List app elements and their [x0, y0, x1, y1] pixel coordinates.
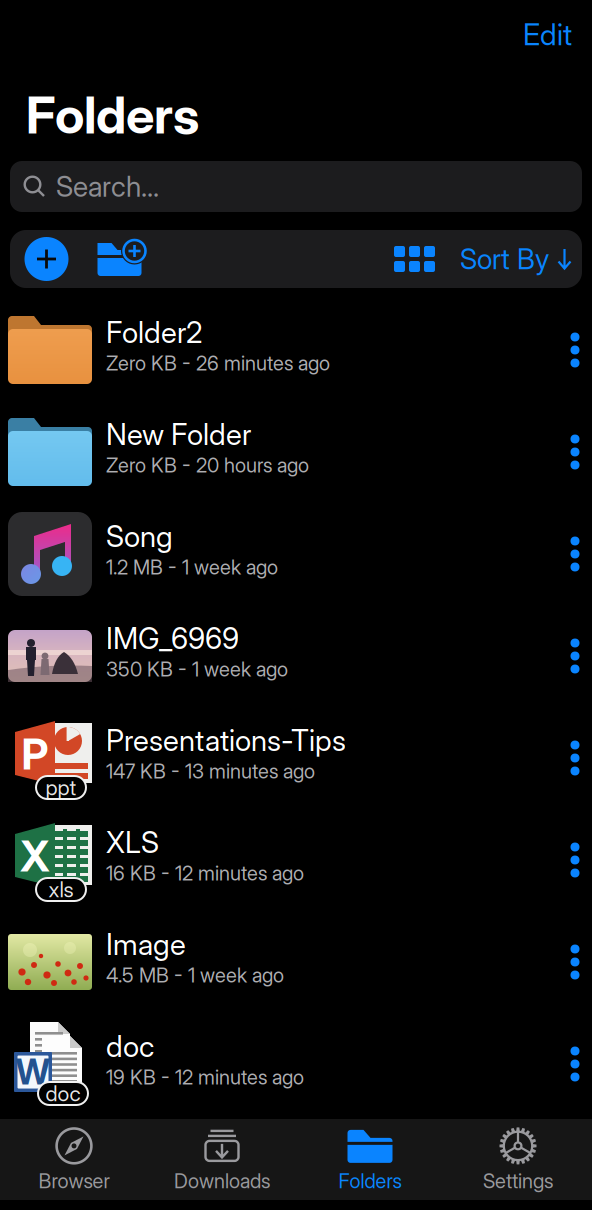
staticText: 147 KB - 13 minutes ago [106, 759, 315, 783]
staticText: 1.2 MB - 1 week ago [106, 555, 278, 579]
staticText: doc [45, 1081, 80, 1106]
button[interactable]: Sort By [460, 230, 582, 288]
button[interactable]: Song [0, 503, 592, 605]
button[interactable]: Image [0, 911, 592, 1013]
staticText: ppt [45, 775, 76, 800]
staticText: 19 KB - 12 minutes ago [106, 1065, 304, 1089]
staticText: W [15, 1051, 50, 1093]
button[interactable]: X [0, 809, 592, 911]
button[interactable]: New Folder [0, 401, 592, 503]
staticText: IMG_6969 [106, 621, 239, 656]
button[interactable]: Browser [0, 1118, 148, 1200]
staticText: Song [106, 519, 173, 554]
staticText: Edit [523, 17, 572, 52]
button[interactable]: Grid view [322, 230, 460, 288]
staticText: Image [106, 927, 186, 962]
staticText: Folders [338, 1169, 401, 1193]
button[interactable]: Edit [503, 7, 592, 62]
staticText: 4.5 MB - 1 week ago [106, 963, 284, 987]
staticText: X [20, 830, 50, 882]
staticText: Presentations-Tips [106, 723, 346, 758]
staticText: doc [106, 1029, 154, 1064]
staticText: xls [48, 877, 73, 902]
staticText: XLS [106, 825, 159, 860]
button[interactable]: Folders [296, 1118, 444, 1200]
staticText: New Folder [106, 417, 251, 452]
staticText: Browser [38, 1169, 109, 1193]
button[interactable]: IMG_6969 [0, 605, 592, 707]
button[interactable]: Folder2 [0, 299, 592, 401]
staticText: Zero KB - 20 hours ago [106, 453, 309, 477]
button[interactable]: Add [18, 230, 75, 288]
button[interactable]: Settings [444, 1118, 592, 1200]
staticText: Zero KB - 26 minutes ago [106, 351, 330, 375]
staticText: Sort By [460, 242, 549, 276]
staticText: Folders [26, 84, 199, 146]
button[interactable]: P [0, 707, 592, 809]
staticText: Settings [483, 1169, 553, 1193]
button[interactable]: W [0, 1013, 592, 1115]
staticText: 350 KB - 1 week ago [106, 657, 288, 681]
button[interactable]: New Folder [75, 230, 151, 288]
staticText: Downloads [174, 1169, 270, 1193]
staticText: Search... [56, 170, 159, 203]
staticText: Folder2 [106, 315, 202, 350]
button[interactable]: Downloads [148, 1118, 296, 1200]
staticText: 16 KB - 12 minutes ago [106, 861, 304, 885]
staticText: P [21, 728, 48, 780]
